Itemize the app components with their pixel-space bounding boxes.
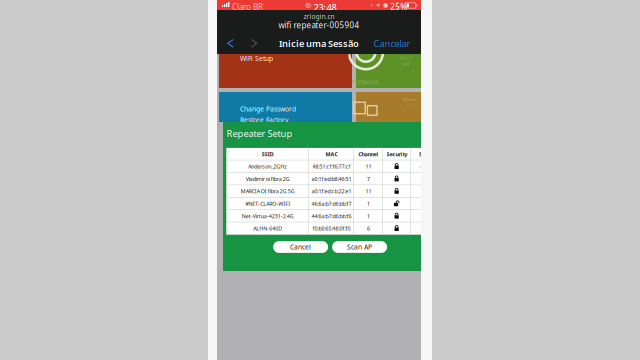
staticText: MAC: [402, 61, 411, 66]
button[interactable]: Scan AP: [332, 241, 387, 253]
staticText: Sig: [419, 151, 427, 158]
staticText: Security: [386, 151, 407, 158]
staticText: 1: [367, 200, 370, 207]
staticText: Cancel: [290, 243, 311, 251]
staticText: zrlogin.cn: [303, 12, 334, 21]
staticText: ALHN-640D: [253, 225, 282, 232]
staticText: Vladimir oi fibra 2G: [246, 175, 290, 182]
staticText: -1: [420, 225, 425, 232]
staticText: 11: [365, 188, 371, 195]
staticText: Repeater Setup: [226, 127, 292, 140]
staticText: #NET-CLARO-WIFI: [245, 200, 290, 207]
button[interactable]: Forward: [244, 34, 264, 52]
staticText: Restore Factory: [240, 115, 288, 124]
staticText: 48:51:cf:f6:77:cf: [312, 163, 350, 170]
staticText: 46:6a:b7:d6:bb:f7: [311, 200, 351, 207]
staticText: 25%: [390, 1, 407, 12]
staticText: 11: [365, 163, 371, 170]
staticText: -2: [420, 200, 425, 207]
staticText: 44:6a:b7:d6:bb:f6: [311, 213, 351, 220]
staticText: SSID: [262, 151, 274, 158]
staticText: Software: [402, 96, 417, 102]
staticText: DHCP: [400, 55, 411, 60]
staticText: -3: [420, 175, 425, 182]
staticText: Anderson_2GHz: [248, 163, 287, 170]
button[interactable]: Cancel: [273, 241, 328, 253]
button[interactable]: Back: [220, 34, 240, 52]
staticText: MARCIA OI fibra 2G 5G: [241, 188, 295, 195]
staticText: wifi repeater-005904: [278, 20, 359, 30]
staticText: Network: [352, 77, 379, 86]
staticText: Change Password: [240, 104, 296, 113]
staticText: 23:48: [313, 1, 336, 14]
staticText: Channel: [358, 151, 378, 158]
staticText: Cancelar: [373, 37, 410, 50]
staticText: Claro BR: [232, 2, 263, 12]
staticText: -11: [419, 163, 427, 170]
staticText: v1.1: [407, 103, 414, 108]
staticText: 6: [367, 225, 370, 232]
staticText: a0:1f:ed:cb:22:e1: [311, 188, 351, 195]
staticText: 7: [367, 175, 370, 182]
staticText: -3: [420, 213, 425, 220]
staticText: f0:b0:65:48:0f:f0: [312, 225, 350, 232]
staticText: WiFi Setup: [240, 54, 273, 63]
staticText: a0:1f:ed:b8:46:51: [311, 175, 351, 182]
staticText: MAC: [325, 151, 337, 158]
button[interactable]: Cancelar: [373, 36, 417, 50]
staticText: Net-Virtua-4231-2.4G: [242, 213, 294, 220]
staticText: 1: [367, 213, 370, 220]
staticText: Scan AP: [347, 243, 372, 251]
staticText: -2: [420, 188, 425, 195]
staticText: Inicie uma Sessão: [279, 37, 359, 50]
